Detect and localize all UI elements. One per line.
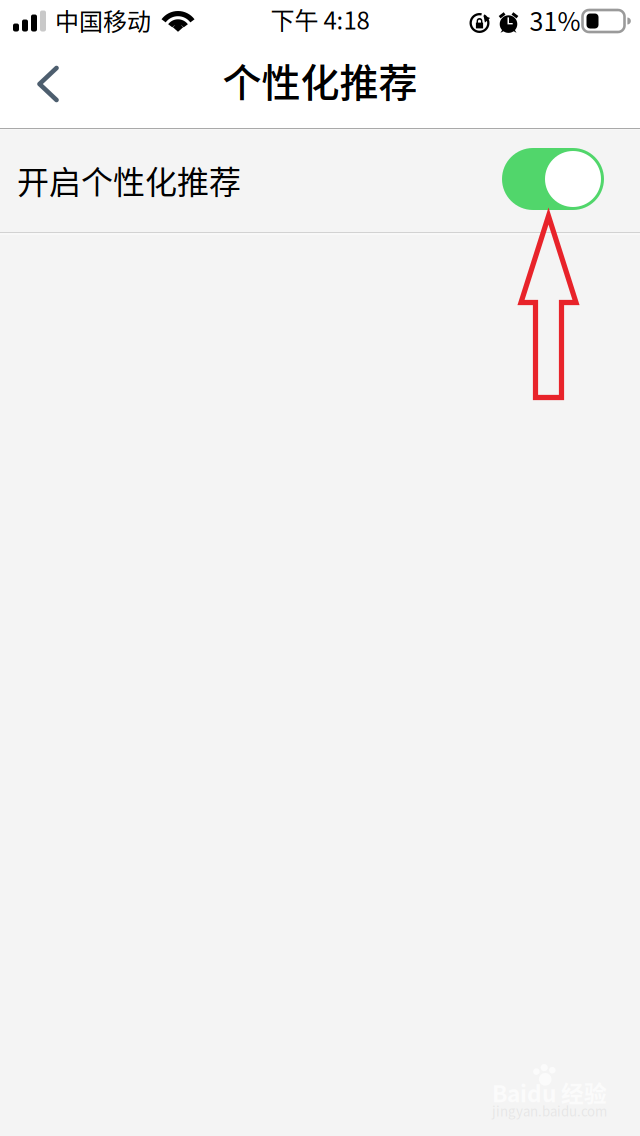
staticText: 中国移动 [55,3,151,37]
staticText: 开启个性化推荐 [17,157,241,203]
staticText: jingyan.baidu.com [492,1101,607,1120]
button[interactable]: 返回 [0,47,96,127]
staticText: 个性化推荐 [222,52,417,108]
button[interactable]: 开启个性化推荐 [502,150,604,212]
staticText: 下午 4:18 [270,2,369,36]
staticText: Baidu 经验 [492,1076,607,1109]
staticText: 31% [529,2,580,38]
